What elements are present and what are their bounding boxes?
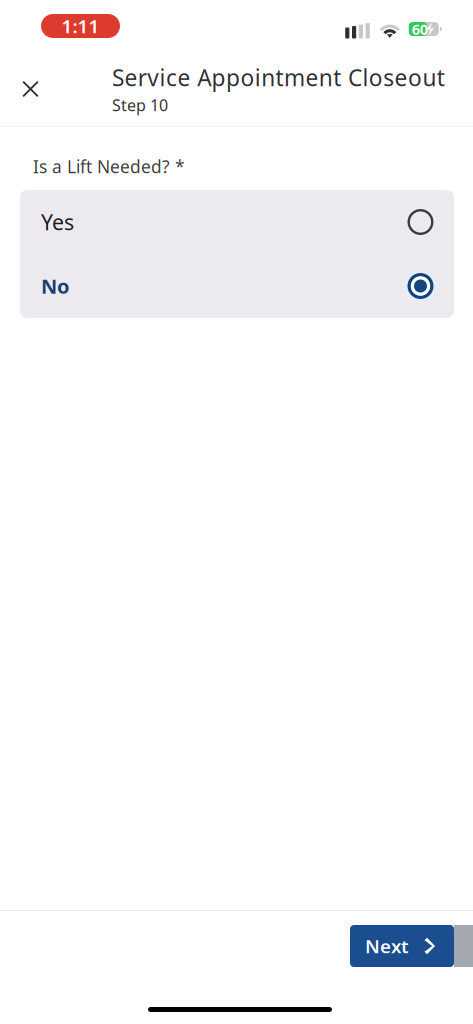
staticText: 1:11 (61, 14, 99, 38)
staticText: Next (365, 934, 409, 958)
button[interactable]: Close (0, 52, 61, 126)
staticText: Service Appointment Closeout (112, 62, 445, 92)
staticText: Is a Lift Needed? * (33, 155, 185, 178)
staticText: No (41, 273, 70, 299)
button[interactable]: Next (350, 925, 454, 967)
staticText: Yes (41, 208, 74, 236)
button[interactable]: No (20, 254, 454, 318)
staticText: Step 10 (112, 94, 168, 116)
staticText: 60 (412, 19, 428, 39)
button[interactable]: Yes (20, 190, 454, 254)
